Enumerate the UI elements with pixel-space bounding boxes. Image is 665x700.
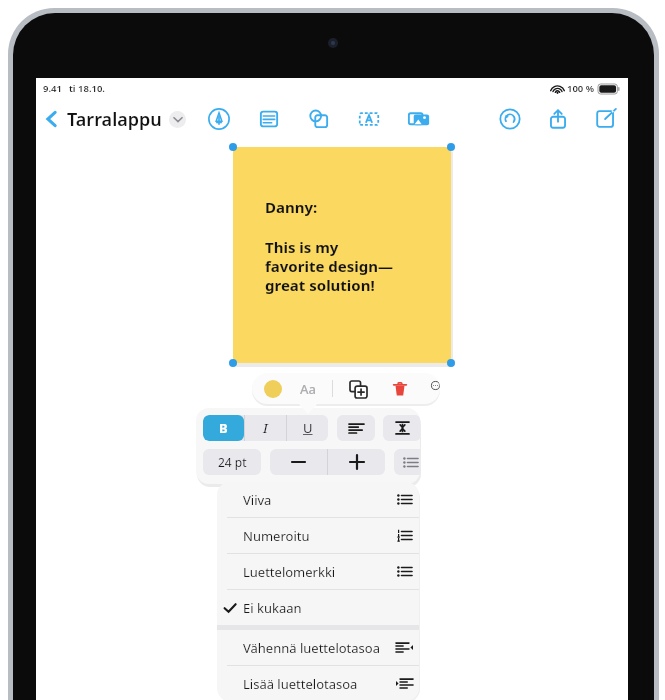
staticText: Luettelomerkki [243,563,336,581]
button[interactable]: Share [543,104,573,134]
button[interactable]: Text box [354,104,384,134]
button[interactable]: Duplicate [347,378,369,400]
button[interactable]: More [431,378,440,400]
button[interactable]: B [203,415,244,441]
staticText: Ei kukaan [243,599,302,617]
button[interactable]: Luettelomerkki [217,554,419,589]
button[interactable]: Shape [304,104,334,134]
staticText: Numeroitu [243,527,310,545]
staticText: U [303,419,313,437]
staticText: 100 % [567,82,595,95]
button[interactable]: Danny: [233,147,451,363]
button[interactable]: Decrease size [270,449,327,475]
other: More options [169,111,186,128]
staticText: This is my favorite design— great soluti… [265,237,393,295]
staticText: Lisää luettelotasoa [243,675,358,693]
button[interactable]: Undo [495,104,525,134]
button[interactable]: U [287,415,328,441]
staticText: I [263,419,268,437]
button[interactable]: Increase size [328,449,385,475]
button[interactable]: Back [43,100,188,138]
button[interactable]: Numeroitu [217,518,419,553]
staticText: Danny: [265,197,318,217]
button[interactable]: Lists [394,449,420,475]
staticText: Tarralappu [67,107,162,132]
staticText: ti 18.10. [69,82,105,95]
button[interactable]: Viiva [217,482,419,517]
button[interactable]: Line spacing [383,415,420,441]
staticText: B [219,419,228,437]
staticText: Aa [300,380,316,398]
button[interactable]: Compose [591,104,621,134]
button[interactable]: 24 pt [203,449,261,475]
button[interactable]: Ei kukaan [217,590,419,625]
button[interactable]: Insert media [404,104,434,134]
button[interactable]: Delete [389,378,411,400]
staticText: Vähennä luettelotasoa [243,639,380,657]
staticText: 24 pt [218,454,247,470]
staticText: 9.41 [43,82,62,95]
staticText: Viiva [243,491,272,509]
button[interactable]: Note colour [264,380,282,398]
other: Back [45,109,58,129]
button[interactable]: Lisää luettelotasoa [217,666,419,700]
button[interactable]: Sticky note [254,104,284,134]
button[interactable]: Align left [337,415,375,441]
button[interactable]: Vähennä luettelotasoa [217,630,419,665]
button[interactable]: Markup [204,104,234,134]
button[interactable]: Aa [298,378,318,400]
button[interactable]: I [245,415,286,441]
